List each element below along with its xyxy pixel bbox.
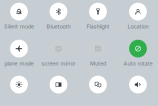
button[interactable]: Flashlight [89,3,107,20]
staticText: Auto rotate [123,60,152,67]
button[interactable]: Auto rotate [129,40,147,57]
button[interactable]: Brightness [10,76,28,93]
staticText: Flashlight [86,23,109,30]
button[interactable]: Muted [89,40,107,57]
staticText: Silent mode [4,23,34,30]
staticText: Location [127,23,148,30]
button[interactable]: Multi window [89,76,107,93]
button[interactable]: Silent mode [10,3,28,20]
button[interactable]: Screen mirroring [50,40,67,57]
button[interactable]: Volume [129,76,147,93]
button[interactable]: Airplane mode [10,40,28,57]
staticText: Bluetooth [46,23,70,30]
staticText: screen mirror [41,60,75,67]
staticText: plane mode [4,60,33,67]
button[interactable]: Bluetooth [50,3,67,20]
button[interactable]: Location [129,3,147,20]
button[interactable]: Dark mode [50,76,67,93]
staticText: Muted [90,60,106,67]
